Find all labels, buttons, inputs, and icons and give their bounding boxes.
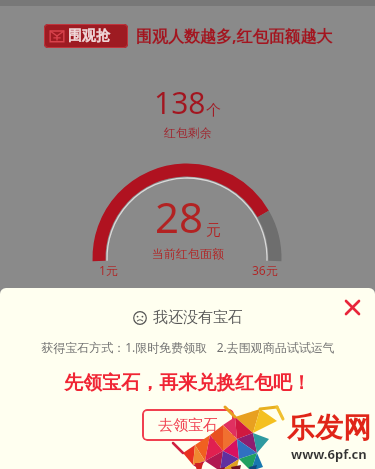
button[interactable]: 去领宝石 xyxy=(142,409,234,441)
staticText: 围观抢 xyxy=(68,27,110,45)
button[interactable]: 关闭 xyxy=(339,294,365,320)
staticText: www.6pf.cn xyxy=(291,445,367,463)
staticText: 先领宝石，再来兑换红包吧！ xyxy=(64,371,311,395)
staticText: 我还没有宝石 xyxy=(153,308,243,327)
staticText: 36元 xyxy=(252,262,278,278)
staticText: 乐发网 xyxy=(287,410,371,445)
staticText: 1元 xyxy=(99,262,118,278)
button[interactable]: 围观抢 xyxy=(44,24,128,48)
staticText: 个 xyxy=(206,101,221,120)
staticText: 去领宝石 xyxy=(158,416,218,435)
staticText: 元 xyxy=(206,221,221,240)
staticText: 获得宝石方式：1.限时免费领取 2.去围观商品试试运气 xyxy=(41,339,335,355)
staticText: 当前红包面额 xyxy=(152,246,224,261)
staticText: 28 xyxy=(155,188,204,245)
staticText: 138 xyxy=(154,82,206,123)
staticText: 红包剩余 xyxy=(164,125,212,140)
staticText: 围观人数越多,红包面额越大 xyxy=(136,25,333,47)
